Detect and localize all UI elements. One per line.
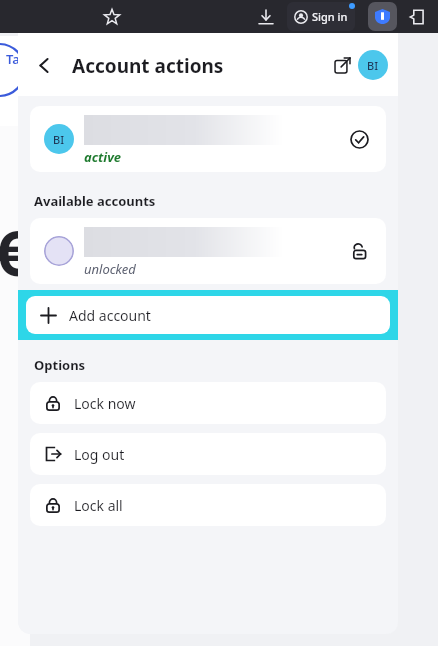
button[interactable]: Add account <box>18 290 398 340</box>
button[interactable]: Back <box>26 47 62 83</box>
button[interactable]: Unlocked <box>346 238 372 264</box>
staticText: active <box>84 148 122 166</box>
button[interactable]: Open in new window <box>324 47 360 83</box>
button[interactable]: Account avatar <box>358 50 388 80</box>
staticText: Options <box>34 356 86 374</box>
button[interactable]: Extension <box>368 2 397 31</box>
button[interactable]: Active account <box>346 126 372 152</box>
button[interactable]: Log out <box>30 433 386 475</box>
button[interactable]: Sign in <box>287 2 355 31</box>
staticText: Account actions <box>72 53 224 79</box>
button[interactable]: Lock all <box>30 484 386 526</box>
staticText: BI <box>367 58 379 73</box>
button[interactable]: Bookmark <box>99 4 125 30</box>
button[interactable]: Extensions <box>404 4 430 30</box>
staticText: BI <box>53 132 65 147</box>
staticText: unlocked <box>84 260 136 278</box>
staticText: Log out <box>74 445 125 464</box>
staticText: Lock all <box>74 496 123 515</box>
staticText: Ta <box>6 50 20 68</box>
button[interactable]: unlocked <box>30 218 386 284</box>
button[interactable]: Lock now <box>30 382 386 424</box>
button[interactable]: BI <box>30 106 386 172</box>
staticText: Sign in <box>312 9 348 24</box>
staticText: Lock now <box>74 394 136 413</box>
staticText: Add account <box>69 306 151 325</box>
staticText: € <box>0 210 30 294</box>
staticText: Available accounts <box>34 192 156 210</box>
button[interactable]: Downloads <box>253 4 279 30</box>
